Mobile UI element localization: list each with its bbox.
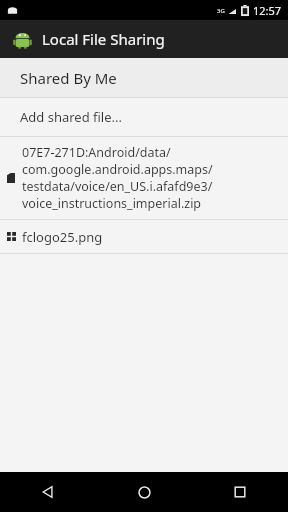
- button[interactable]: Add shared file...: [0, 98, 288, 136]
- staticText: com.google.android.apps.maps/: [22, 161, 213, 178]
- staticText: Local File Sharing: [42, 29, 165, 49]
- staticText: voice_instructions_imperial.zip: [22, 195, 202, 212]
- button[interactable]: fclogo25.png: [0, 220, 288, 253]
- button[interactable]: Recent apps: [192, 472, 288, 512]
- staticText: testdata/voice/en_US.i.afafd9e3/: [22, 178, 213, 195]
- button[interactable]: Back: [0, 472, 96, 512]
- button[interactable]: Home: [96, 472, 192, 512]
- staticText: Shared By Me: [20, 68, 117, 88]
- button[interactable]: 07E7-271D:Android/data/: [0, 137, 288, 219]
- staticText: 3G: [217, 7, 225, 15]
- staticText: fclogo25.png: [22, 228, 103, 246]
- staticText: 12:57: [253, 3, 282, 18]
- staticText: 07E7-271D:Android/data/: [22, 144, 171, 161]
- staticText: Add shared file...: [20, 108, 123, 126]
